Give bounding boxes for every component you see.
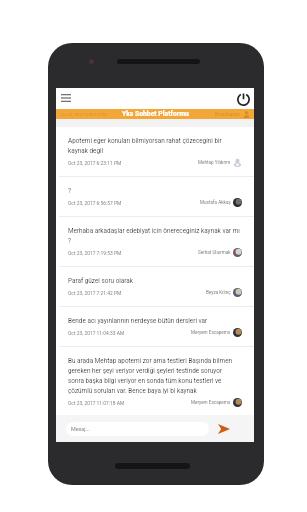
button[interactable]: Bende acı yayınlarının nerdeyse bütün de… bbox=[56, 307, 254, 347]
staticText: Mustafa Akkuş bbox=[200, 200, 231, 205]
button[interactable]: Power bbox=[235, 91, 251, 107]
staticText: Oct 23, 2017 6:23:11 PM bbox=[68, 160, 122, 166]
staticText: Oct 23, 2017 6:56:57 PM bbox=[68, 200, 122, 206]
staticText: Oct 23, 2017 7:19:53 PM bbox=[68, 250, 122, 256]
staticText: Bende acı yayınlarının nerdeyse bütün de… bbox=[68, 317, 208, 324]
button[interactable]: Apotemi eğer konuları bilmiyorsan rahat … bbox=[56, 127, 254, 177]
staticText: Merhaba arkadaşlar edebiyat icin önerece… bbox=[68, 227, 240, 244]
staticText: Yks Sohbet Platformu bbox=[122, 110, 189, 118]
staticText: Bera Kaplan bbox=[215, 112, 241, 118]
staticText: Bu arada Mehtap apotemi zor ama testleri… bbox=[68, 357, 242, 394]
button[interactable]: Merhaba arkadaşlar edebiyat icin önerece… bbox=[56, 217, 254, 267]
staticText: Paraf güzel soru olarak bbox=[68, 277, 134, 284]
staticText: Mesaj... bbox=[71, 426, 90, 432]
staticText: Oct 23, 2017 7:21:42 PM bbox=[68, 290, 122, 296]
staticText: Oct 23, 2017 5:58:13 PM bbox=[60, 112, 107, 117]
button[interactable]: Send bbox=[211, 415, 237, 442]
button[interactable]: Bu arada Mehtap apotemi zor ama testleri… bbox=[56, 347, 254, 415]
staticText: Oct 23, 2017 11:07:18 AM bbox=[68, 400, 125, 406]
staticText: ? bbox=[68, 187, 72, 194]
button[interactable]: Paraf güzel soru olarak bbox=[56, 267, 254, 307]
staticText: Serhat Uluırmak bbox=[198, 250, 231, 255]
button[interactable]: Menu bbox=[58, 90, 74, 106]
button[interactable]: Mesaj... bbox=[66, 422, 209, 436]
staticText: Beyza Kılınç bbox=[206, 290, 231, 295]
staticText: Meryem Escapemo bbox=[191, 400, 231, 405]
staticText: Meryem Escapemo bbox=[191, 330, 231, 335]
staticText: Oct 23, 2017 11:04:33 AM bbox=[68, 330, 125, 336]
staticText: Mehtap Yıldırım bbox=[198, 160, 231, 165]
button[interactable]: ? bbox=[56, 177, 254, 217]
staticText: Apotemi eğer konuları bilmiyorsan rahat … bbox=[68, 137, 242, 154]
